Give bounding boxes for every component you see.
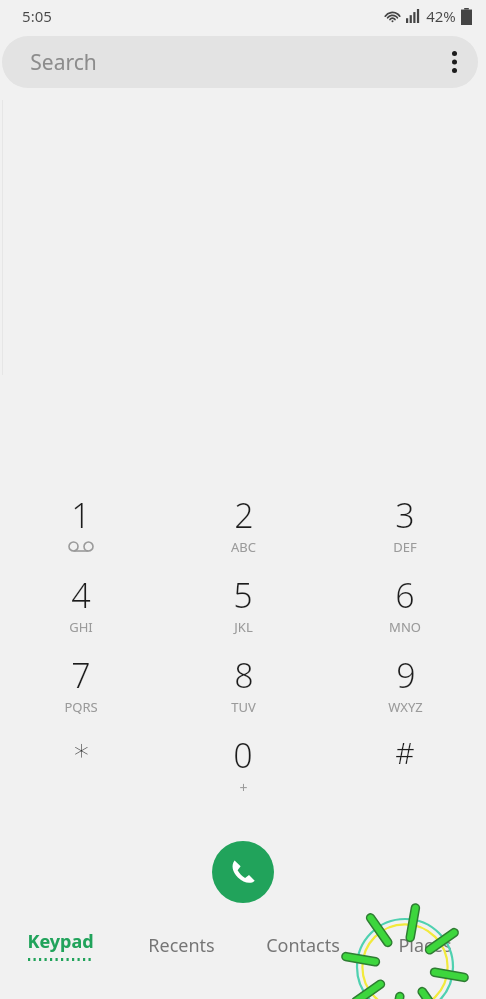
button[interactable]: Keypad xyxy=(0,914,121,976)
staticText: WXYZ xyxy=(388,698,423,716)
staticText: 0 xyxy=(233,732,253,778)
staticText: JKL xyxy=(234,618,253,636)
button[interactable]: More options xyxy=(430,38,478,86)
button[interactable]: 3 xyxy=(324,492,486,572)
staticText: Search xyxy=(30,48,97,77)
staticText: ABC xyxy=(231,538,256,556)
staticText: 3 xyxy=(395,492,415,538)
staticText: 9 xyxy=(396,652,416,698)
button[interactable]: Contacts xyxy=(242,914,364,976)
button[interactable]: Search xyxy=(2,36,478,88)
staticText: 4 xyxy=(71,572,91,618)
staticText: + xyxy=(239,778,248,797)
staticText: MNO xyxy=(389,618,421,636)
button[interactable]: 7 xyxy=(0,652,162,732)
staticText: ∗ xyxy=(72,732,91,767)
staticText: GHI xyxy=(69,618,93,636)
button[interactable]: 9 xyxy=(324,652,486,732)
button[interactable]: 6 xyxy=(324,572,486,652)
staticText: 7 xyxy=(71,652,91,698)
button[interactable]: ∗ xyxy=(0,732,162,812)
button[interactable]: 8 xyxy=(162,652,324,732)
staticText: Places xyxy=(398,933,452,958)
staticText: Keypad xyxy=(27,929,94,954)
staticText: TUV xyxy=(231,698,256,716)
staticText: 8 xyxy=(234,652,254,698)
staticText: 5:05 xyxy=(22,6,52,26)
staticText: PQRS xyxy=(64,698,98,716)
button[interactable]: Places xyxy=(364,914,486,976)
staticText: DEF xyxy=(393,538,417,556)
button[interactable]: Recents xyxy=(121,914,242,976)
button[interactable]: 0 xyxy=(162,732,324,812)
button[interactable]: 4 xyxy=(0,572,162,652)
staticText: 1 xyxy=(71,492,91,538)
staticText: 42% xyxy=(426,6,456,26)
staticText: 5 xyxy=(233,572,253,618)
button[interactable]: 1 xyxy=(0,492,162,572)
staticText: # xyxy=(395,732,415,773)
staticText: 6 xyxy=(395,572,415,618)
staticText: Contacts xyxy=(266,933,340,958)
button[interactable]: Call xyxy=(212,841,274,903)
button[interactable]: 5 xyxy=(162,572,324,652)
button[interactable]: # xyxy=(324,732,486,812)
staticText: 2 xyxy=(234,492,254,538)
button[interactable]: 2 xyxy=(162,492,324,572)
staticText: Recents xyxy=(148,933,215,958)
